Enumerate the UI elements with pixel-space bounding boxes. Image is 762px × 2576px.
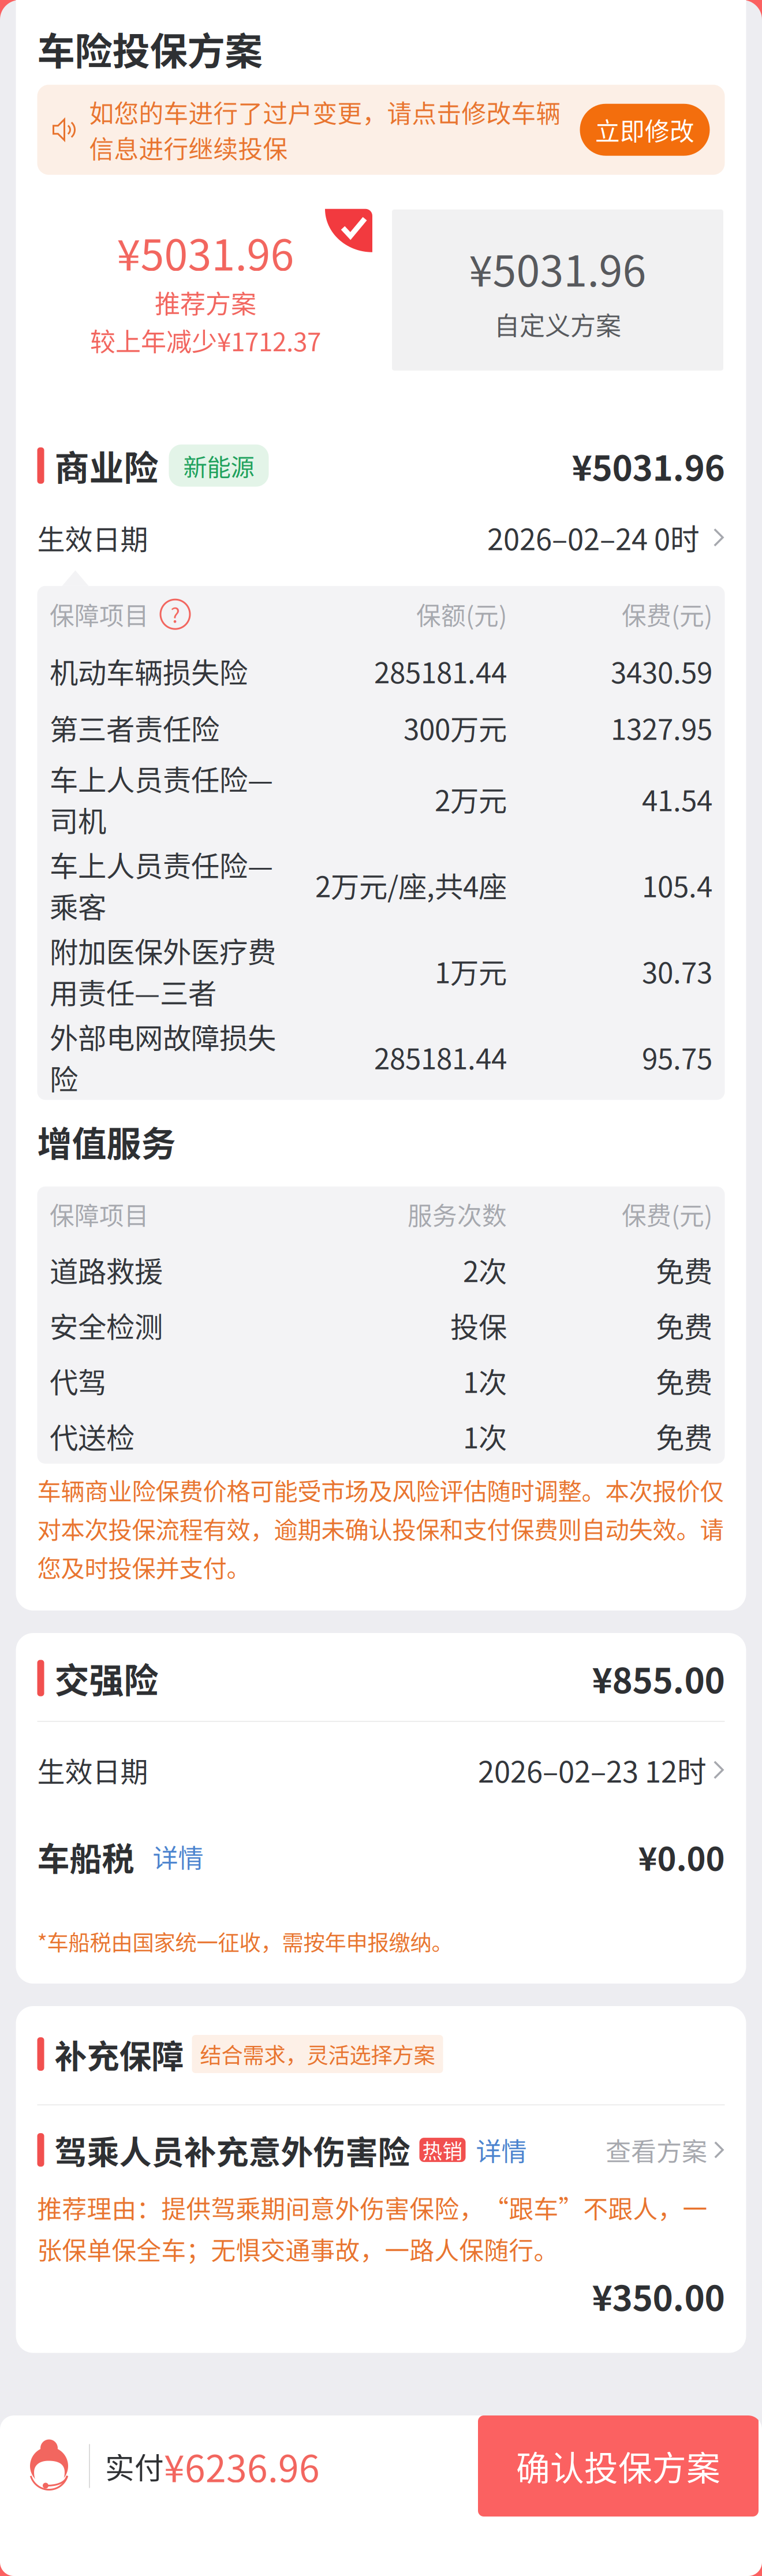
staticText: 增值服务 [37, 1116, 176, 1167]
staticText: 立即修改 [595, 112, 694, 148]
button[interactable]: 详情 [466, 2131, 527, 2168]
staticText: 41.54 [642, 778, 712, 819]
staticText: 商业险 [55, 440, 158, 491]
staticText: 免费 [656, 1415, 712, 1457]
staticText: ¥350.00 [592, 2271, 725, 2321]
staticText: 车险投保方案 [37, 21, 262, 76]
staticText: ¥6236.96 [164, 2439, 320, 2493]
staticText: 如您的车进行了过户变更，请点击修改车辆信息进行继续投保 [89, 94, 561, 165]
staticText: 结合需求，灵活选择方案 [200, 2038, 435, 2070]
staticText: 3430.59 [611, 650, 712, 691]
staticText: ¥855.00 [592, 1653, 725, 1703]
button[interactable]: 查看方案 [606, 2131, 725, 2168]
button[interactable]: ¥5031.96 [392, 209, 723, 371]
button[interactable]: ¥5031.96 [39, 209, 372, 371]
staticText: 免费 [656, 1249, 712, 1290]
staticText: 代驾 [50, 1360, 106, 1401]
staticText: 2026–02–23 12时 [478, 1749, 707, 1791]
staticText: 保费(元) [622, 1196, 712, 1232]
button[interactable]: 生效日期 [37, 1745, 725, 1795]
staticText: 保额(元) [416, 596, 507, 632]
staticText: 实付 [105, 2445, 164, 2487]
staticText: 自定义方案 [494, 306, 621, 343]
staticText: 详情 [153, 1838, 203, 1875]
staticText: 安全检测 [50, 1304, 163, 1346]
staticText: 保障项目 [50, 596, 149, 632]
button[interactable]: 确认投保方案 [478, 2415, 759, 2517]
staticText: 105.4 [642, 864, 712, 905]
staticText: 机动车辆损失险 [50, 650, 248, 691]
staticText: 2次 [463, 1249, 507, 1290]
staticText: 推荐理由：提供驾乘期间意外伤害保险，“跟车”不跟人，一张保单保全车；无惧交通事故… [37, 2190, 707, 2267]
staticText: 道路救援 [50, 1249, 163, 1290]
staticText: 补充保障 [55, 2031, 184, 2077]
staticText: 驾乘人员补充意外伤害险 [55, 2126, 410, 2173]
staticText: 2026–02–24 0时 [487, 516, 700, 559]
staticText: 1327.95 [611, 707, 712, 748]
staticText: 外部电网故障损失险 [50, 1016, 276, 1098]
button[interactable]: 详情 [134, 1838, 203, 1875]
staticText: 2万元 [435, 778, 507, 819]
staticText: 保费(元) [622, 596, 712, 632]
staticText: *车船税由国家统一征收，需按年申报缴纳。 [37, 1926, 453, 1957]
staticText: 车辆商业险保费价格可能受市场及风险评估随时调整。本次报价仅对本次投保流程有效，逾… [37, 1472, 724, 1584]
staticText: 新能源 [183, 448, 254, 483]
button[interactable]: 立即修改 [580, 104, 710, 156]
staticText: 1次 [463, 1360, 507, 1401]
staticText: 30.73 [642, 950, 712, 991]
staticText: 300万元 [404, 707, 507, 748]
staticText: 较上年减少¥1712.37 [90, 322, 321, 359]
staticText: 查看方案 [606, 2131, 707, 2168]
staticText: 交强险 [55, 1653, 158, 1703]
staticText: 车上人员责任险—司机 [50, 757, 273, 840]
staticText: 285181.44 [374, 650, 507, 691]
staticText: 车上人员责任险—乘客 [50, 844, 273, 926]
button[interactable]: 在线客服 [0, 2440, 72, 2492]
button[interactable]: 生效日期 [37, 513, 725, 562]
staticText: 285181.44 [374, 1036, 507, 1077]
staticText: ? [171, 600, 180, 629]
staticText: 95.75 [642, 1036, 712, 1077]
staticText: 生效日期 [37, 517, 148, 558]
staticText: 确认投保方案 [516, 2441, 720, 2491]
staticText: 2万元/座,共4座 [315, 864, 507, 905]
staticText: 免费 [656, 1360, 712, 1401]
staticText: 车船税 [37, 1833, 134, 1880]
staticText: ¥5031.96 [117, 221, 294, 283]
staticText: 1次 [463, 1415, 507, 1457]
staticText: 推荐方案 [155, 284, 256, 321]
staticText: 免费 [656, 1304, 712, 1346]
staticText: 生效日期 [37, 1750, 148, 1790]
staticText: 投保 [450, 1304, 507, 1346]
staticText: ¥0.00 [638, 1833, 725, 1880]
staticText: 服务次数 [408, 1196, 507, 1232]
staticText: 代送检 [50, 1415, 135, 1457]
staticText: ¥5031.96 [572, 440, 725, 491]
staticText: 保障项目 [50, 1196, 149, 1232]
staticText: 详情 [476, 2131, 527, 2168]
staticText: 1万元 [435, 950, 507, 991]
staticText: 热销 [422, 2135, 463, 2164]
staticText: 附加医保外医疗费用责任—三者 [50, 930, 276, 1012]
staticText: ¥5031.96 [469, 238, 646, 299]
staticText: 第三者责任险 [50, 707, 219, 748]
